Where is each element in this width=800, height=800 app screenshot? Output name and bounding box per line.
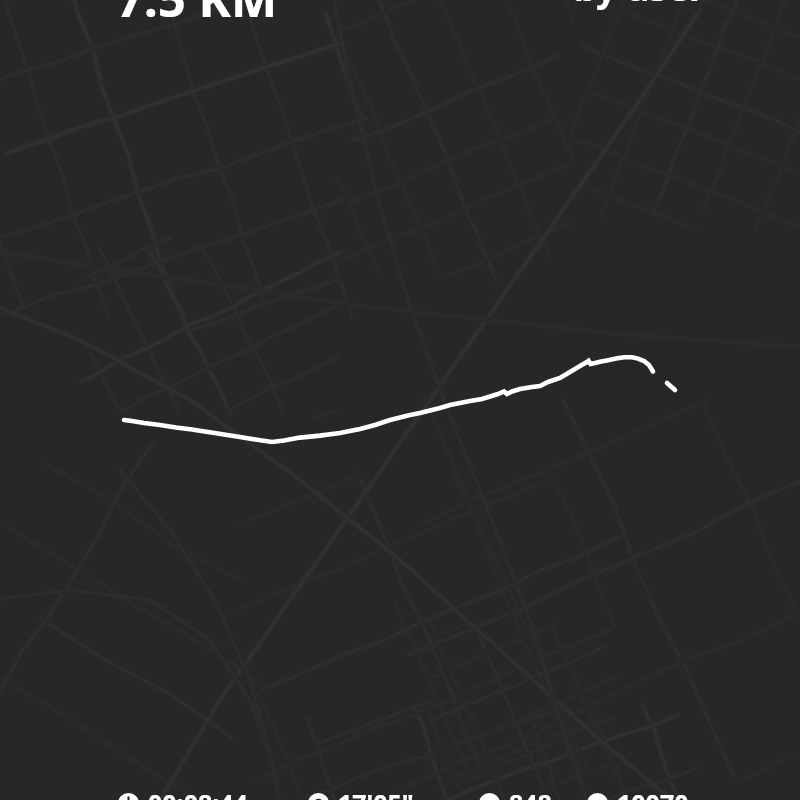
staticText: 848: [509, 786, 552, 800]
staticText: 17'05": [338, 786, 414, 800]
staticText: by user: [574, 0, 706, 12]
staticText: 00:08:44: [148, 786, 248, 800]
button[interactable]: Steps: [587, 786, 689, 800]
button[interactable]: Duration: [118, 786, 248, 800]
staticText: 10070: [617, 786, 689, 800]
button[interactable]: Pace: [308, 786, 414, 800]
staticText: 7.5 KM: [116, 0, 278, 32]
button[interactable]: Calories: [479, 786, 552, 800]
